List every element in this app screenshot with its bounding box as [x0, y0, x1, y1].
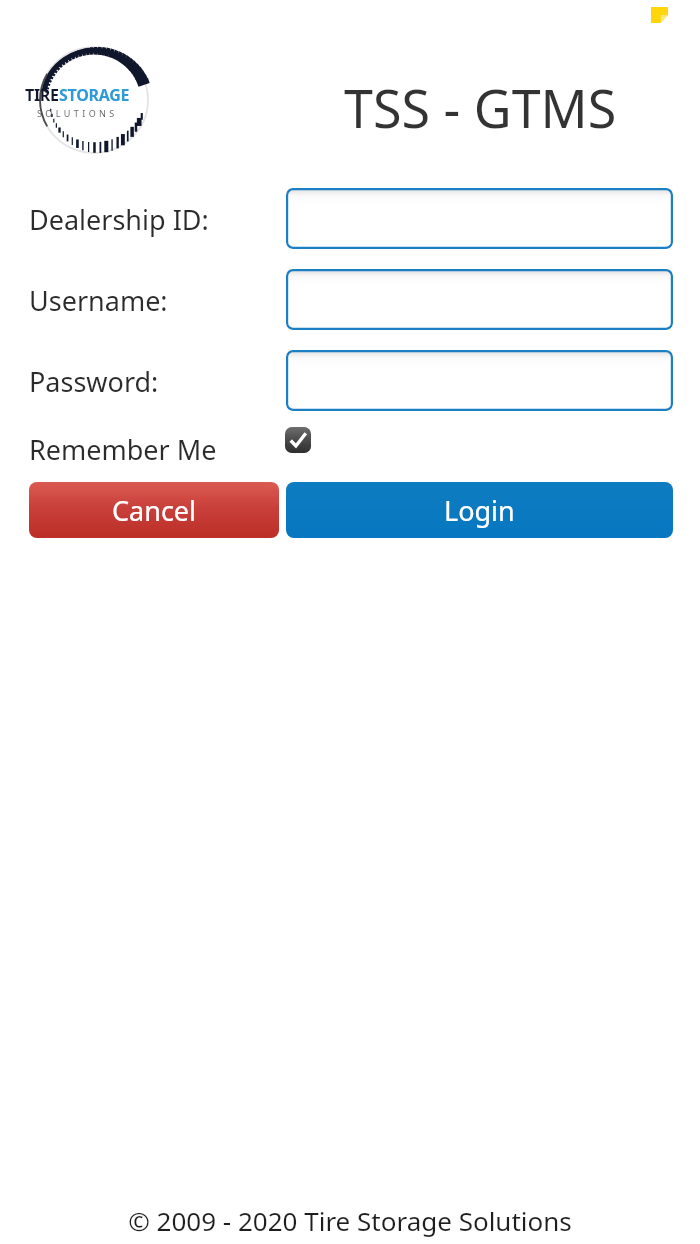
staticText: Password: — [29, 363, 159, 400]
button[interactable] — [286, 269, 673, 330]
button[interactable]: Remember Me checkbox — [285, 427, 311, 453]
staticText: Cancel — [112, 492, 197, 529]
staticText: STORAGE — [59, 84, 130, 106]
staticText: SOLUTIONS — [37, 107, 118, 119]
staticText: TIRE — [25, 84, 59, 106]
button[interactable] — [286, 188, 673, 249]
button[interactable] — [286, 350, 673, 411]
staticText: © 2009 - 2020 Tire Storage Solutions — [128, 1203, 572, 1238]
staticText: TSS - GTMS — [344, 72, 617, 138]
button[interactable]: Cancel — [29, 482, 279, 538]
button[interactable]: Bookmark — [651, 7, 668, 23]
button[interactable]: Login — [286, 482, 673, 538]
staticText: Login — [444, 492, 515, 529]
staticText: Remember Me — [29, 431, 217, 468]
staticText: Username: — [29, 282, 168, 319]
staticText: Dealership ID: — [29, 201, 209, 238]
